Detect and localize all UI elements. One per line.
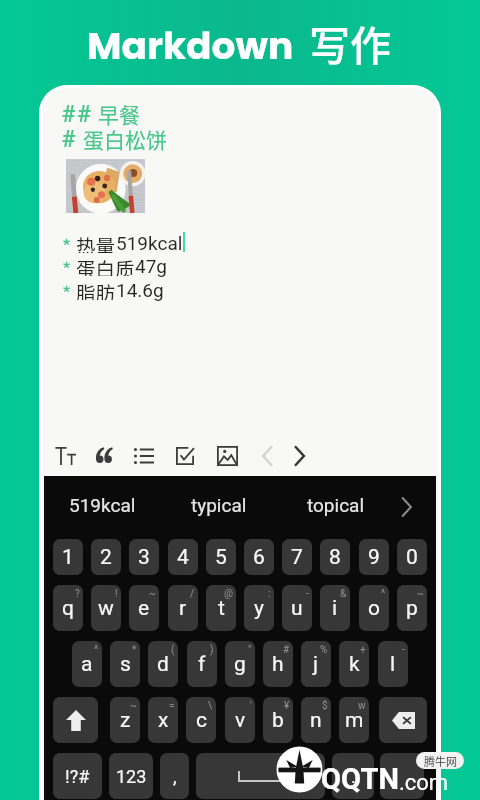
button[interactable]: k xyxy=(339,641,369,687)
staticText: * xyxy=(62,254,72,276)
staticText: r xyxy=(179,596,187,621)
button[interactable]: b xyxy=(263,697,293,743)
button[interactable]: 123 xyxy=(109,753,153,799)
button[interactable]: Checklist xyxy=(166,437,204,475)
staticText: * xyxy=(62,278,72,300)
button[interactable]: v xyxy=(225,697,255,743)
button[interactable]: 0 xyxy=(397,539,427,575)
button[interactable]: Insert image xyxy=(208,437,246,475)
staticText: 519kcal xyxy=(69,494,136,516)
staticText: 4 xyxy=(177,545,189,570)
staticText: a xyxy=(81,652,93,677)
button[interactable]: !?# xyxy=(53,753,102,799)
staticText: i xyxy=(332,596,338,621)
staticText: # xyxy=(283,644,290,656)
staticText: + xyxy=(360,644,366,656)
button[interactable]: w xyxy=(91,585,121,631)
button[interactable]: 1 xyxy=(53,539,83,575)
button[interactable]: g xyxy=(225,641,255,687)
button[interactable]: x xyxy=(148,697,178,743)
button[interactable]: m xyxy=(339,697,369,743)
button[interactable]: Bulleted list xyxy=(125,437,163,475)
staticText: b xyxy=(272,708,284,733)
staticText: ! xyxy=(115,588,118,600)
staticText: 蛋白质 xyxy=(76,254,135,276)
staticText: v xyxy=(235,708,246,733)
button[interactable]: u xyxy=(282,585,312,631)
button[interactable]: . xyxy=(332,753,374,799)
staticText: s xyxy=(120,652,131,677)
staticText: z xyxy=(120,708,131,733)
button[interactable]: l xyxy=(378,641,408,687)
button[interactable]: r xyxy=(168,585,198,631)
staticText: u xyxy=(291,596,303,621)
button[interactable]: typical xyxy=(164,476,274,534)
button[interactable]: z xyxy=(110,697,140,743)
button[interactable]: 3 xyxy=(129,539,159,575)
staticText: typical xyxy=(191,494,247,516)
staticText: 519kcal xyxy=(116,232,183,254)
staticText: x xyxy=(158,708,169,733)
staticText: ¥ xyxy=(284,700,290,712)
button[interactable]: q xyxy=(53,585,83,631)
button[interactable]: s xyxy=(110,641,140,687)
button[interactable]: a xyxy=(72,641,102,687)
button[interactable]: 4 xyxy=(168,539,198,575)
button[interactable]: Backspace xyxy=(379,697,427,743)
staticText: 8 xyxy=(329,545,341,570)
button[interactable]: Enter xyxy=(380,753,424,799)
staticText: 早餐 xyxy=(98,99,140,129)
button[interactable]: 8 xyxy=(320,539,350,575)
staticText: * xyxy=(132,644,137,656)
button[interactable]: p xyxy=(397,585,427,631)
staticText: ^ xyxy=(94,644,99,656)
button[interactable]: h xyxy=(263,641,293,687)
staticText: w xyxy=(98,596,114,621)
staticText: o xyxy=(368,596,380,621)
staticText: 蛋白松饼 xyxy=(83,124,167,154)
staticText: ' xyxy=(250,700,252,712)
button[interactable]: , xyxy=(160,753,189,799)
staticText: k xyxy=(349,652,360,677)
button[interactable]: o xyxy=(359,585,389,631)
button[interactable]: Redo xyxy=(280,437,318,475)
button[interactable]: n xyxy=(301,697,331,743)
button[interactable]: e xyxy=(129,585,159,631)
button[interactable]: y xyxy=(244,585,274,631)
staticText: 1 xyxy=(62,545,74,570)
staticText: y xyxy=(254,596,264,621)
button[interactable]: c xyxy=(186,697,216,743)
staticText: 9 xyxy=(368,545,380,570)
staticText: e xyxy=(138,596,150,621)
button[interactable]: 5 xyxy=(206,539,236,575)
button[interactable]: Shift xyxy=(53,697,98,743)
button[interactable]: 6 xyxy=(244,539,274,575)
staticText: g xyxy=(234,652,246,677)
button[interactable]: 519kcal xyxy=(47,476,157,534)
button[interactable]: More suggestions xyxy=(390,491,422,523)
staticText: .com xyxy=(399,770,449,796)
button[interactable]: 2 xyxy=(91,539,121,575)
button[interactable]: 7 xyxy=(282,539,312,575)
staticText: & xyxy=(340,588,347,600)
button[interactable]: d xyxy=(148,641,178,687)
staticText: 3 xyxy=(138,545,150,570)
staticText: 14.6g xyxy=(116,279,164,301)
staticText: w xyxy=(358,700,366,712)
staticText: 123 xyxy=(116,766,147,787)
staticText: n xyxy=(310,708,322,733)
button[interactable]: f xyxy=(187,641,217,687)
staticText: 0 xyxy=(406,545,418,570)
button[interactable]: j xyxy=(301,641,331,687)
staticText: / xyxy=(190,588,195,600)
staticText: 5 xyxy=(215,545,227,570)
button[interactable]: Quote xyxy=(85,437,123,475)
button[interactable]: Space xyxy=(196,753,325,799)
button[interactable]: i xyxy=(320,585,350,631)
staticText: d xyxy=(157,652,169,677)
button[interactable]: Text format xyxy=(46,437,84,475)
button[interactable]: Undo xyxy=(248,437,286,475)
button[interactable]: topical xyxy=(281,476,391,534)
button[interactable]: 9 xyxy=(359,539,389,575)
button[interactable]: t xyxy=(206,585,236,631)
